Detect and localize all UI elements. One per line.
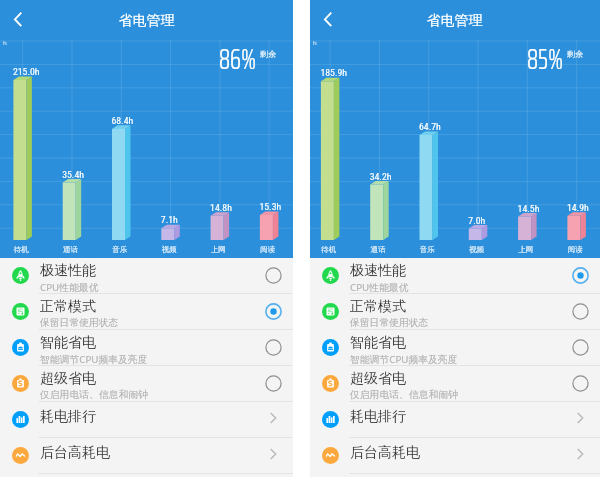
button[interactable]: 智能省电 — [572, 339, 589, 356]
staticText: 超级省电 — [350, 370, 406, 388]
button[interactable]: 极速性能 — [265, 267, 282, 284]
button[interactable]: 耗电排行 — [310, 402, 600, 438]
staticText: 省电管理 — [427, 12, 483, 29]
button[interactable]: 耗电排行 — [0, 402, 293, 438]
button[interactable]: 正常模式 — [310, 294, 600, 330]
button[interactable]: 正常模式 — [572, 303, 589, 320]
staticText: 智能省电 — [40, 334, 96, 352]
button[interactable]: 智能省电 — [310, 330, 600, 366]
button[interactable]: Back — [310, 0, 350, 40]
button[interactable]: 超级省电 — [0, 366, 293, 402]
staticText: 保留日常使用状态 — [40, 317, 119, 329]
button[interactable]: 极速性能 — [0, 258, 293, 294]
button[interactable]: 后台高耗电 — [0, 438, 293, 474]
staticText: 正常模式 — [350, 298, 406, 316]
staticText: 智能调节CPU频率及亮度 — [350, 353, 458, 366]
button[interactable]: 正常模式 — [0, 294, 293, 330]
staticText: 超级省电 — [40, 370, 96, 388]
button[interactable]: Back — [0, 0, 40, 40]
staticText: CPU性能最优 — [40, 281, 99, 294]
staticText: CPU性能最优 — [350, 281, 409, 294]
button[interactable]: 极速性能 — [572, 267, 589, 284]
staticText: 耗电排行 — [40, 408, 265, 426]
staticText: 智能省电 — [350, 334, 406, 352]
staticText: 仅启用电话、信息和闹钟 — [40, 389, 148, 401]
button[interactable]: 智能省电 — [265, 339, 282, 356]
button[interactable]: 正常模式 — [265, 303, 282, 320]
staticText: 后台高耗电 — [350, 444, 572, 462]
staticText: 耗电排行 — [350, 408, 572, 426]
button[interactable]: 超级省电 — [572, 375, 589, 392]
button[interactable]: 智能省电 — [0, 330, 293, 366]
button[interactable]: 后台高耗电 — [310, 438, 600, 474]
staticText: 省电管理 — [119, 12, 175, 29]
staticText: 极速性能 — [40, 262, 96, 280]
staticText: 智能调节CPU频率及亮度 — [40, 353, 148, 366]
staticText: 保留日常使用状态 — [350, 317, 429, 329]
button[interactable]: 极速性能 — [310, 258, 600, 294]
staticText: 后台高耗电 — [40, 444, 265, 462]
staticText: 仅启用电话、信息和闹钟 — [350, 389, 458, 401]
staticText: 极速性能 — [350, 262, 406, 280]
staticText: 正常模式 — [40, 298, 96, 316]
button[interactable]: 超级省电 — [310, 366, 600, 402]
button[interactable]: 超级省电 — [265, 375, 282, 392]
